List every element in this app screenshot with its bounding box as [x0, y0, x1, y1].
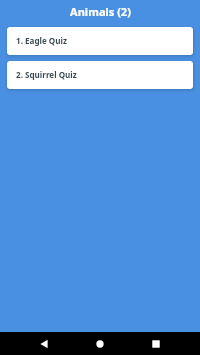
staticText: 1. Eagle Quiz: [16, 35, 67, 46]
button[interactable]: Recent apps: [133, 332, 178, 355]
staticText: Animals (2): [70, 4, 131, 19]
staticText: 2. Squirrel Quiz: [16, 69, 77, 80]
button[interactable]: 2. Squirrel Quiz: [7, 61, 193, 89]
button[interactable]: Back: [21, 332, 66, 355]
button[interactable]: Home: [77, 332, 122, 355]
button[interactable]: 1. Eagle Quiz: [7, 27, 193, 55]
